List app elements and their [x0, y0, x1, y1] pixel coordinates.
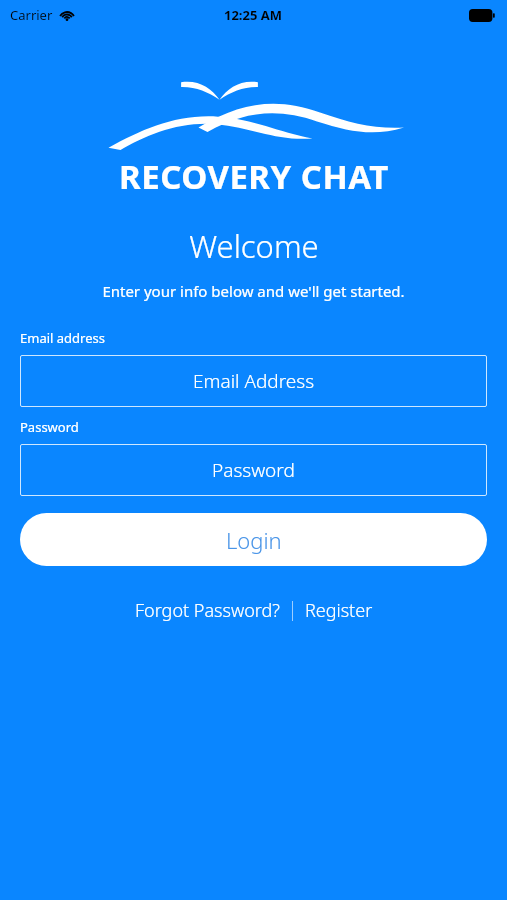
staticText: Register — [305, 598, 373, 623]
staticText: Welcome — [189, 225, 319, 267]
staticText: Enter your info below and we'll get star… — [0, 281, 507, 301]
button[interactable]: Register — [301, 594, 377, 627]
staticText: Password — [20, 418, 79, 436]
staticText: Password — [212, 457, 295, 483]
button[interactable]: Forgot Password? — [131, 594, 284, 627]
button[interactable]: Password — [20, 444, 487, 496]
staticText: Carrier — [10, 6, 53, 24]
staticText: Login — [226, 525, 282, 555]
button[interactable]: Email Address — [20, 355, 487, 407]
button[interactable]: Login — [20, 513, 487, 566]
staticText: Email Address — [193, 368, 315, 394]
staticText: 12:25 AM — [224, 6, 283, 24]
staticText: RECOVERY CHAT — [119, 154, 389, 199]
staticText: Email address — [20, 329, 105, 347]
staticText: Forgot Password? — [135, 598, 280, 623]
